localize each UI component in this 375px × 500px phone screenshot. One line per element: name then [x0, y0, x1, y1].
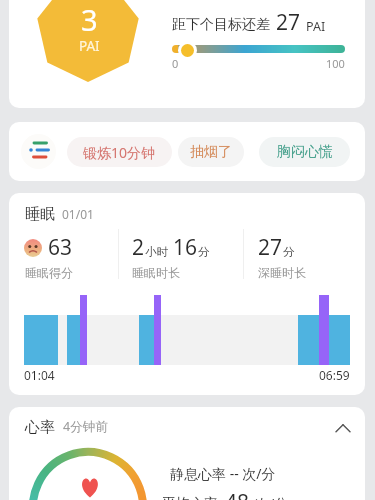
staticText: 06:59	[319, 367, 350, 383]
staticText: 抽烟了	[190, 143, 232, 161]
staticText: 睡眠	[25, 205, 55, 224]
staticText: 63	[48, 233, 73, 262]
staticText: 48	[225, 488, 250, 500]
button[interactable]: 收起	[331, 418, 355, 442]
staticText: PAI	[79, 37, 100, 55]
staticText: 27	[276, 8, 301, 37]
staticText: 平均心率	[162, 495, 218, 500]
staticText: 4分钟前	[63, 418, 108, 435]
button[interactable]: 抽烟了	[178, 137, 244, 167]
button[interactable]: 锻炼10分钟	[67, 137, 172, 167]
staticText: 心率	[25, 418, 55, 437]
staticText: 01:04	[24, 367, 55, 383]
staticText: 3	[81, 0, 98, 39]
staticText: 27	[258, 233, 283, 262]
staticText: 睡眠时长	[132, 265, 180, 280]
button[interactable]: 心率	[9, 407, 365, 500]
button[interactable]: 3	[9, 0, 365, 108]
staticText: 次/分	[255, 494, 289, 500]
staticText: 深睡时长	[258, 265, 306, 280]
staticText: 16	[173, 233, 198, 262]
staticText: 小时	[145, 245, 168, 259]
staticText: 距下个目标还差	[172, 16, 270, 34]
staticText: 01/01	[62, 206, 94, 222]
button[interactable]: 睡眠	[9, 193, 365, 395]
staticText: 0	[172, 56, 179, 71]
staticText: 静息心率 -- 次/分	[170, 464, 276, 483]
button[interactable]: 记录	[21, 134, 56, 169]
staticText: 100	[326, 56, 345, 71]
staticText: 胸闷心慌	[277, 143, 333, 161]
staticText: 分	[283, 245, 295, 259]
staticText: 锻炼10分钟	[83, 143, 156, 162]
staticText: PAI	[306, 18, 326, 35]
button[interactable]: 胸闷心慌	[259, 137, 350, 167]
staticText: 2	[132, 233, 145, 262]
staticText: 分	[198, 245, 210, 259]
staticText: 睡眠得分	[25, 265, 73, 280]
